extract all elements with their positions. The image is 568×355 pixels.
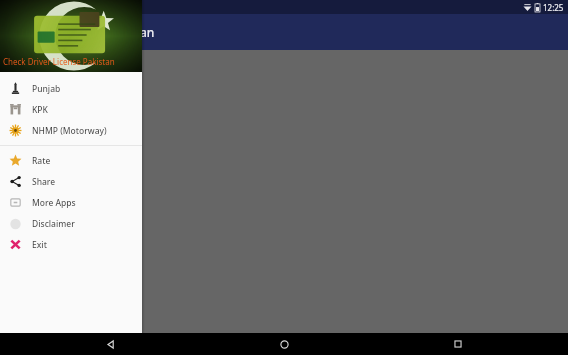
staticText: Rate: [32, 155, 51, 167]
button[interactable]: Home: [274, 334, 294, 354]
button[interactable]: Disclaimer: [0, 213, 142, 234]
button[interactable]: Exit: [0, 234, 142, 255]
button[interactable]: Recent apps: [448, 334, 468, 354]
staticText: More Apps: [32, 197, 76, 209]
button[interactable]: NHMP (Motorway): [0, 120, 142, 141]
staticText: Exit: [32, 239, 47, 251]
staticText: Punjab: [32, 83, 61, 95]
button[interactable]: Punjab: [0, 78, 142, 99]
button[interactable]: Share: [0, 171, 142, 192]
staticText: an: [140, 24, 155, 40]
staticText: Check Driver License Pakistan: [3, 56, 115, 67]
button[interactable]: Rate: [0, 150, 142, 171]
staticText: Share: [32, 176, 56, 188]
staticText: NHMP (Motorway): [32, 125, 107, 137]
button[interactable]: More Apps: [0, 192, 142, 213]
button[interactable]: KPK: [0, 99, 142, 120]
button[interactable]: Back: [100, 334, 120, 354]
staticText: Disclaimer: [32, 218, 75, 230]
staticText: 12:25: [543, 2, 564, 13]
staticText: KPK: [32, 104, 48, 116]
